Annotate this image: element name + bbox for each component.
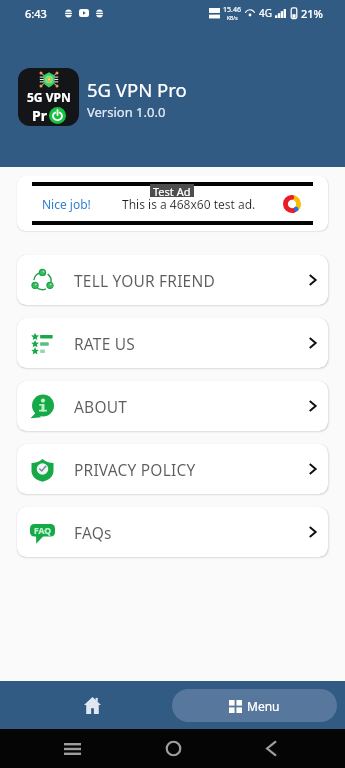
- staticText: This is a 468x60 test ad.: [122, 196, 256, 212]
- staticText: 5G VPN: [27, 89, 71, 105]
- staticText: 15.46: [223, 5, 241, 15]
- staticText: Menu: [247, 698, 280, 714]
- button[interactable]: Home: [0, 681, 172, 729]
- button[interactable]: RATE US: [17, 318, 328, 368]
- staticText: 4G: [259, 6, 272, 20]
- staticText: Pr: [32, 106, 47, 125]
- staticText: Nice job!: [42, 196, 91, 212]
- staticText: TELL YOUR FRIEND: [74, 270, 215, 291]
- staticText: KB/s: [227, 15, 238, 22]
- button[interactable]: FAQ: [17, 507, 328, 557]
- staticText: FAQs: [74, 522, 112, 543]
- button[interactable]: ABOUT: [17, 381, 328, 431]
- button[interactable]: TELL YOUR FRIEND: [17, 255, 328, 305]
- staticText: FAQ: [34, 525, 51, 537]
- staticText: 5G VPN Pro: [87, 77, 187, 102]
- staticText: Version 1.0.0: [87, 103, 166, 121]
- button[interactable]: PRIVACY POLICY: [17, 444, 328, 494]
- staticText: 21%: [301, 6, 323, 21]
- staticText: RATE US: [74, 333, 135, 354]
- button[interactable]: Home: [149, 729, 197, 768]
- staticText: 6:43: [25, 6, 47, 21]
- staticText: Test Ad: [153, 184, 191, 197]
- button[interactable]: Menu: [172, 689, 337, 722]
- staticText: PRIVACY POLICY: [74, 459, 196, 480]
- button[interactable]: Back: [247, 729, 295, 768]
- staticText: ABOUT: [74, 396, 128, 417]
- button[interactable]: Recent apps: [48, 729, 96, 768]
